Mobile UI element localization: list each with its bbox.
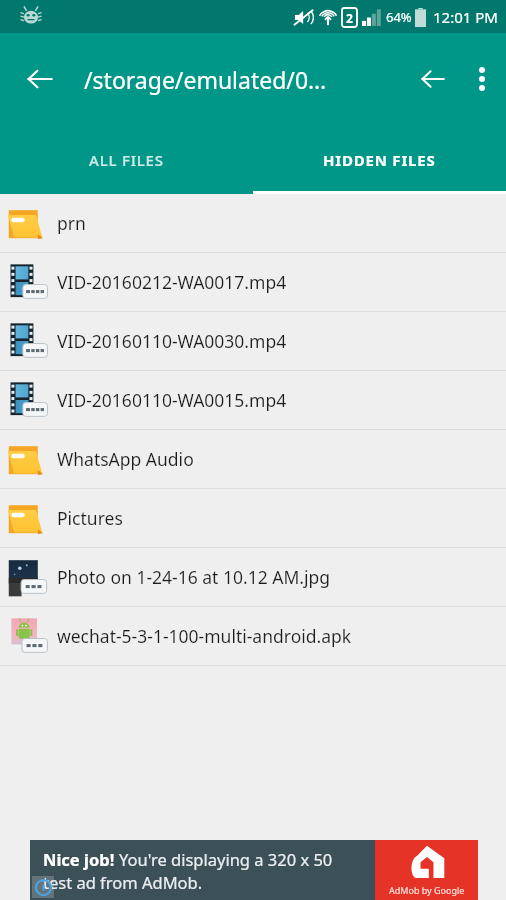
staticText: HIDDEN FILES [323, 150, 436, 170]
staticText: test ad from AdMob. [43, 871, 203, 893]
staticText: VID-20160212-WA0017.mp4 [57, 270, 287, 294]
staticText: Nice job! [43, 848, 119, 870]
button[interactable]: VID-20160110-WA0015.mp4 [0, 371, 506, 429]
staticText: ALL FILES [89, 150, 164, 170]
button[interactable]: VID-20160110-WA0030.mp4 [0, 312, 506, 370]
button[interactable]: HIDDEN FILES [253, 125, 506, 194]
button[interactable]: Pictures [0, 489, 506, 547]
staticText: AdMob by Google [389, 884, 465, 896]
staticText: Photo on 1-24-16 at 10.12 AM.jpg [57, 565, 331, 589]
staticText: VID-20160110-WA0015.mp4 [57, 388, 287, 412]
button[interactable]: ALL FILES [0, 125, 253, 194]
button[interactable]: Nice job! [30, 840, 478, 900]
button[interactable]: More options [458, 55, 506, 103]
staticText: 12:01 PM [433, 7, 498, 27]
button[interactable]: VID-20160212-WA0017.mp4 [0, 253, 506, 311]
button[interactable]: WhatsApp Audio [0, 430, 506, 488]
staticText: prn [57, 211, 86, 235]
staticText: 2 [346, 10, 353, 26]
staticText: 64% [386, 8, 412, 26]
staticText: Pictures [57, 506, 123, 530]
staticText: wechat-5-3-1-100-multi-android.apk [57, 624, 352, 648]
button[interactable]: Back [408, 54, 458, 104]
staticText: VID-20160110-WA0030.mp4 [57, 329, 287, 353]
button[interactable]: Photo on 1-24-16 at 10.12 AM.jpg [0, 548, 506, 606]
staticText: /storage/emulated/0… [84, 64, 327, 95]
button[interactable]: Up [14, 53, 66, 105]
staticText: You're displaying a 320 x 50 [119, 848, 333, 870]
button[interactable]: wechat-5-3-1-100-multi-android.apk [0, 607, 506, 665]
button[interactable]: prn [0, 194, 506, 252]
staticText: WhatsApp Audio [57, 447, 194, 471]
